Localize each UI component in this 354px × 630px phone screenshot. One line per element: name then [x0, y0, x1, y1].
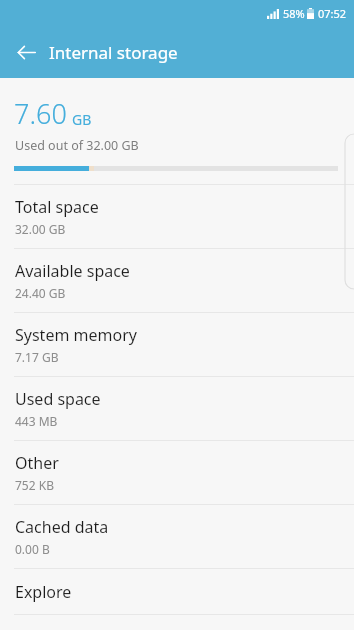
staticText: Explore	[15, 581, 72, 603]
staticText: Used space	[15, 388, 101, 410]
staticText: System memory	[15, 324, 137, 346]
button[interactable]: Explore	[0, 569, 354, 614]
staticText: 752 KB	[15, 477, 54, 493]
staticText: Total space	[15, 196, 99, 218]
staticText: 24.40 GB	[15, 285, 66, 301]
staticText: Internal storage	[49, 41, 178, 64]
button[interactable]: Other	[0, 441, 354, 504]
staticText: GB	[72, 110, 92, 129]
button[interactable]: Used space	[0, 377, 354, 440]
staticText: 0.00 B	[15, 541, 50, 557]
staticText: Other	[15, 452, 59, 474]
staticText: 32.00 GB	[15, 221, 66, 237]
staticText: Used out of 32.00 GB	[15, 137, 139, 154]
staticText: 7.17 GB	[15, 349, 59, 365]
staticText: 443 MB	[15, 413, 58, 429]
button[interactable]: Available space	[0, 249, 354, 312]
staticText: Cached data	[15, 516, 109, 538]
staticText: 07:52	[318, 6, 347, 21]
staticText: 58%	[283, 6, 305, 21]
staticText: Available space	[15, 260, 130, 282]
staticText: 7.60	[14, 95, 67, 132]
button[interactable]: Total space	[0, 185, 354, 248]
button[interactable]: Navigate up	[9, 35, 43, 69]
button[interactable]: System memory	[0, 313, 354, 376]
button[interactable]: Cached data	[0, 505, 354, 568]
